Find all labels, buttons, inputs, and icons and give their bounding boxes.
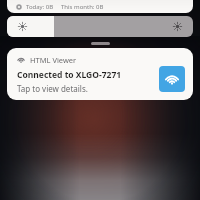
staticText: Tap to view details.: [17, 83, 88, 94]
button[interactable]: Brightness: [7, 16, 193, 37]
button[interactable]: [0, 40, 200, 47]
staticText: Today: 0B: [26, 3, 54, 11]
button[interactable]: HTML Viewer: [7, 48, 193, 100]
staticText: Connected to XLGO-7271: [17, 69, 122, 81]
button[interactable]: Today: 0B: [7, 0, 193, 13]
staticText: This month: 0B: [61, 3, 104, 11]
staticText: HTML Viewer: [30, 55, 77, 65]
button[interactable]: Wi-Fi: [159, 66, 185, 92]
